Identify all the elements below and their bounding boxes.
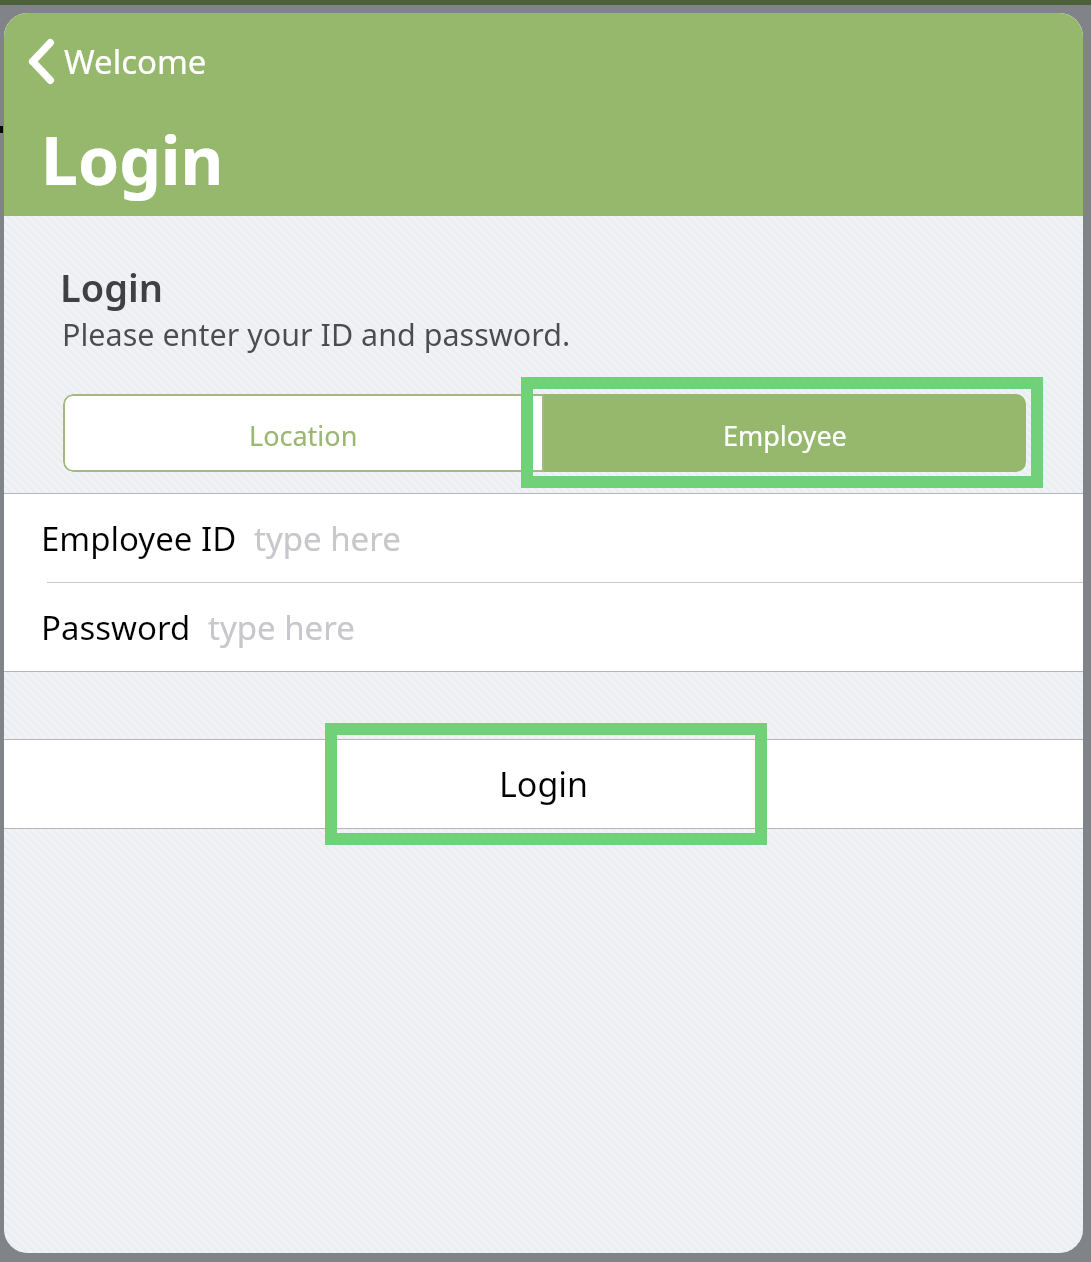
staticText: Welcome <box>64 39 207 84</box>
staticText: Login <box>60 261 163 313</box>
button[interactable]: Password <box>4 583 1083 671</box>
staticText: type here <box>254 516 401 561</box>
button[interactable]: Back to Welcome <box>23 33 213 90</box>
staticText: type here <box>208 605 355 650</box>
staticText: Location <box>249 417 358 454</box>
button[interactable]: Employee ID <box>4 494 1083 582</box>
staticText: Employee ID <box>41 516 237 561</box>
staticText: Please enter your ID and password. <box>62 313 571 355</box>
button[interactable]: Location <box>63 394 544 472</box>
button[interactable]: Login <box>4 740 1083 828</box>
staticText: Login <box>499 761 589 807</box>
staticText: Password <box>41 605 191 650</box>
staticText: Employee <box>723 417 847 454</box>
button[interactable]: Employee <box>544 394 1026 472</box>
staticText: Login <box>41 114 224 204</box>
